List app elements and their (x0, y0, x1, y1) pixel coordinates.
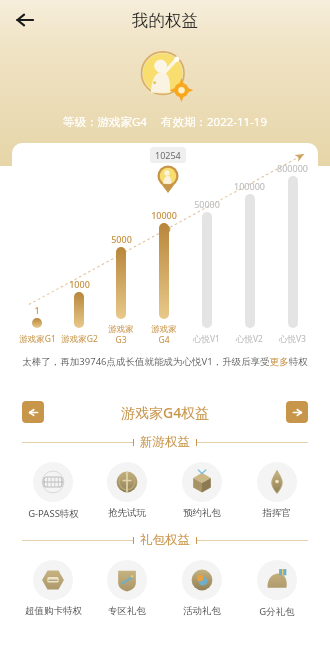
staticText: 游戏家 G4 (151, 324, 177, 345)
button[interactable]: 超值购卡特权 (16, 558, 90, 619)
button[interactable]: 专区礼包 (90, 558, 164, 619)
staticText: 1 (34, 304, 40, 316)
button[interactable]: 指挥官 (239, 460, 314, 521)
button[interactable]: G-PASS特权 (16, 460, 90, 522)
button[interactable]: 预约礼包 (164, 460, 239, 521)
button[interactable]: 抢先试玩 (90, 460, 164, 521)
staticText: 50000 (194, 198, 220, 210)
staticText: 1000 (69, 278, 90, 290)
staticText: 活动礼包 (183, 605, 221, 617)
staticText: 游戏家G1 (19, 333, 56, 345)
staticText: G-PASS特权 (28, 507, 79, 520)
staticText: G分礼包 (259, 605, 295, 618)
staticText: 新游权益 (140, 434, 190, 450)
button[interactable]: Previous level (22, 401, 44, 423)
staticText: 游戏家 G3 (108, 324, 134, 345)
staticText: 游戏家G2 (61, 333, 98, 345)
staticText: 礼包权益 (140, 532, 190, 548)
staticText: 超值购卡特权 (25, 605, 82, 617)
button[interactable]: 活动礼包 (164, 558, 239, 619)
staticText: 100000 (234, 180, 265, 192)
button[interactable]: G分礼包 (239, 558, 314, 620)
staticText: 10254 (155, 149, 181, 161)
staticText: 心悦V3 (279, 333, 306, 345)
button[interactable]: Next level (286, 401, 308, 423)
staticText: 预约礼包 (183, 507, 221, 519)
staticText: 10000 (151, 209, 177, 221)
staticText: 有效期：2022-11-19 (161, 114, 268, 130)
staticText: 800000 (277, 162, 308, 174)
staticText: 我的权益 (132, 10, 198, 31)
staticText: 抢先试玩 (108, 507, 146, 519)
staticText: 心悦V2 (236, 333, 263, 345)
staticText: 专区礼包 (108, 605, 146, 617)
staticText: 太棒了，再加39746点成长值就能成为心悦V1，升级后享受更多特权 (22, 355, 308, 368)
staticText: 心悦V1 (193, 333, 220, 345)
button[interactable]: Back (8, 3, 42, 37)
staticText: 等级：游戏家G4 (63, 114, 147, 130)
staticText: 游戏家G4权益 (121, 403, 210, 422)
staticText: 指挥官 (262, 507, 291, 519)
staticText: 5000 (111, 233, 132, 245)
